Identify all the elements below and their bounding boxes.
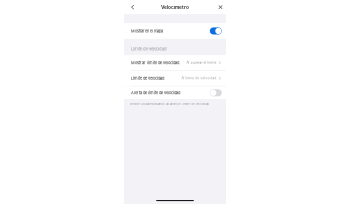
staticText: Recibe una alerta cuando alcances el lím… xyxy=(130,102,209,106)
staticText: Velocímetro xyxy=(161,4,189,10)
button[interactable]: Mostrar en el mapa xyxy=(124,23,226,39)
button[interactable]: Close xyxy=(214,0,227,14)
button[interactable]: Límite de velocidad xyxy=(124,71,226,86)
button[interactable]: Back xyxy=(126,0,139,14)
staticText: Alerta de límite de velocidad xyxy=(131,90,180,95)
button[interactable]: Mostrar límite de velocidad xyxy=(124,55,226,70)
staticText: Mostrar límite de velocidad xyxy=(131,60,179,65)
button[interactable]: Alerta de límite de velocidad xyxy=(124,86,226,99)
staticText: Al superar el límite xyxy=(186,61,216,65)
staticText: Límite de velocidad xyxy=(131,76,164,81)
staticText: Mostrar en el mapa xyxy=(131,29,163,33)
staticText: Al límite de velocidad xyxy=(181,76,216,80)
staticText: Límite de velocidad xyxy=(131,47,167,52)
